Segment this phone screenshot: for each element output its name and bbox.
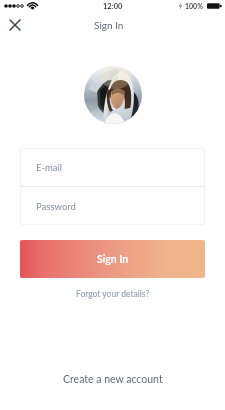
staticText: 100%	[185, 2, 203, 10]
staticText: Sign In	[97, 253, 129, 266]
button[interactable]: E-mail	[20, 148, 205, 186]
button[interactable]: Sign In	[20, 240, 205, 278]
staticText: Create a new account	[63, 373, 163, 386]
button[interactable]: Profile photo	[84, 66, 142, 124]
button[interactable]: Password	[20, 187, 205, 225]
staticText: 12:00	[103, 2, 123, 11]
button[interactable]: Create a new account	[0, 348, 225, 410]
staticText: Sign In	[94, 19, 124, 31]
staticText: Password	[36, 201, 76, 212]
button[interactable]: Forgot your details?	[71, 284, 155, 304]
button[interactable]: Close	[3, 14, 27, 36]
staticText: E-mail	[36, 162, 63, 173]
